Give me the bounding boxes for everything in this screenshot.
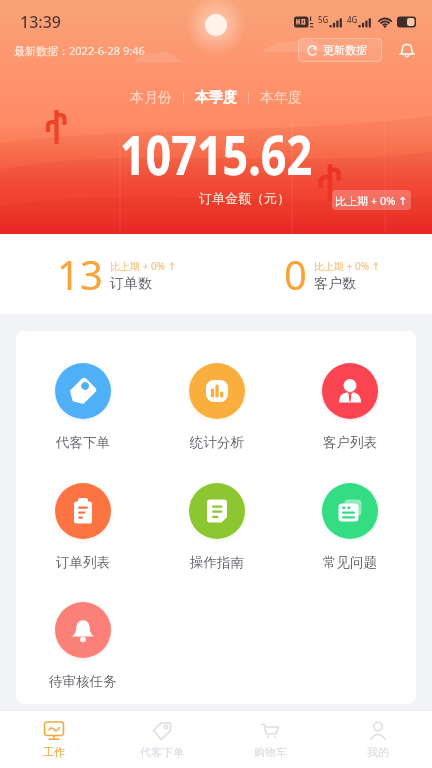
staticText: 13:39 bbox=[20, 11, 61, 33]
staticText: 待审核任务 bbox=[49, 673, 117, 690]
staticText: 比上期 + 0% ↑ bbox=[335, 193, 408, 208]
button[interactable]: 代客下单 bbox=[108, 720, 216, 759]
button[interactable]: Notifications bbox=[396, 39, 418, 61]
staticText: 5G bbox=[318, 14, 329, 25]
button[interactable]: 统计分析 bbox=[150, 360, 283, 451]
button[interactable]: 比上期 + 0% ↑ bbox=[332, 190, 411, 210]
button[interactable]: 本年度 bbox=[249, 86, 313, 110]
staticText: 工作 bbox=[43, 745, 65, 759]
staticText: 本季度 bbox=[195, 89, 237, 107]
staticText: 代客下单 bbox=[140, 745, 184, 759]
button[interactable]: 我的 bbox=[324, 720, 432, 759]
button[interactable]: 13 bbox=[0, 234, 216, 314]
button[interactable]: 操作指南 bbox=[150, 480, 283, 571]
staticText: 统计分析 bbox=[190, 434, 244, 451]
staticText: 订单金额（元） bbox=[199, 190, 290, 206]
button[interactable]: 订单列表 bbox=[16, 480, 150, 571]
button[interactable]: 0 bbox=[216, 234, 432, 314]
staticText: 比上期 + 0% ↑ bbox=[314, 259, 380, 273]
staticText: 比上期 + 0% ↑ bbox=[110, 259, 176, 273]
button[interactable]: 客户列表 bbox=[283, 360, 416, 451]
staticText: 4G bbox=[347, 14, 358, 25]
button[interactable]: 本月份 bbox=[119, 86, 183, 110]
staticText: 13 bbox=[57, 247, 103, 301]
staticText: 订单列表 bbox=[56, 554, 110, 571]
staticText: 10715.62 bbox=[37, 117, 395, 191]
staticText: 客户列表 bbox=[323, 434, 377, 451]
staticText: 客户数 bbox=[314, 275, 356, 293]
button[interactable]: 工作 bbox=[0, 720, 108, 759]
button[interactable]: 本季度 bbox=[184, 86, 248, 110]
staticText: 操作指南 bbox=[190, 554, 244, 571]
button[interactable]: 常见问题 bbox=[283, 480, 416, 571]
button[interactable]: 代客下单 bbox=[16, 360, 150, 451]
button[interactable]: 待审核任务 bbox=[16, 599, 150, 690]
staticText: 本年度 bbox=[260, 89, 302, 107]
staticText: 更新数据 bbox=[323, 43, 367, 57]
staticText: 订单数 bbox=[110, 275, 152, 293]
staticText: 我的 bbox=[367, 745, 389, 759]
button[interactable]: 更新数据 bbox=[298, 38, 382, 62]
staticText: 本月份 bbox=[130, 89, 172, 107]
staticText: 常见问题 bbox=[323, 554, 377, 571]
button[interactable]: 购物车 bbox=[216, 720, 324, 759]
staticText: 最新数据：2022-6-28 9:46 bbox=[14, 43, 145, 58]
staticText: 0 bbox=[284, 247, 307, 301]
staticText: 购物车 bbox=[254, 745, 287, 759]
staticText: 代客下单 bbox=[56, 434, 110, 451]
